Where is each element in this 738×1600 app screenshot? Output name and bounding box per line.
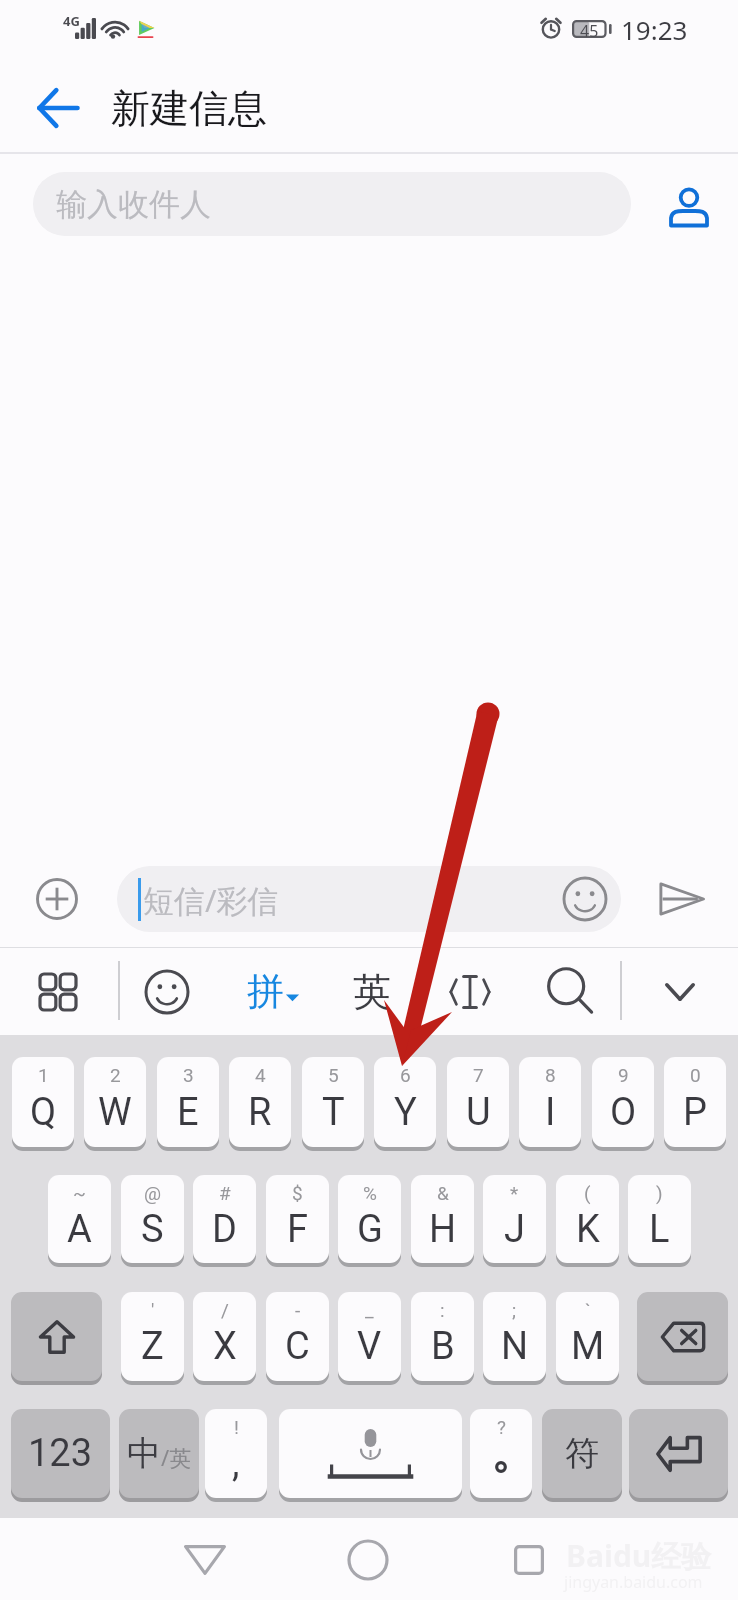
button[interactable]: ?	[470, 1409, 532, 1498]
button[interactable]: Emoji	[557, 871, 613, 927]
button[interactable]: ~	[48, 1175, 111, 1263]
staticText: 4	[255, 1064, 266, 1086]
staticText: I	[545, 1090, 556, 1135]
button[interactable]: :	[411, 1292, 474, 1381]
staticText: 4G	[63, 12, 80, 30]
button[interactable]: Move cursor	[428, 948, 512, 1035]
button[interactable]: Emoji	[123, 948, 211, 1035]
staticText: $	[292, 1182, 303, 1204]
staticText: %	[363, 1182, 377, 1204]
staticText: 0	[690, 1064, 701, 1086]
button[interactable]: Home	[313, 1519, 423, 1600]
staticText: 9	[618, 1064, 629, 1086]
staticText: /	[221, 1299, 229, 1321]
button[interactable]: ;	[483, 1292, 546, 1381]
button[interactable]: Hide keyboard	[634, 948, 726, 1035]
staticText: W	[98, 1090, 132, 1135]
button[interactable]: 8	[519, 1057, 581, 1147]
staticText: H	[429, 1207, 457, 1252]
button[interactable]: 2	[84, 1057, 146, 1147]
button[interactable]: 符	[542, 1409, 622, 1498]
staticText: jingyan.baidu.com	[564, 1571, 703, 1593]
button[interactable]: 6	[374, 1057, 436, 1147]
button[interactable]: #	[193, 1175, 256, 1263]
staticText: @	[144, 1182, 162, 1204]
staticText: V	[357, 1324, 382, 1369]
staticText: ;	[512, 1299, 517, 1321]
staticText: 输入收件人	[56, 185, 211, 224]
button[interactable]: /	[193, 1292, 256, 1381]
staticText: 1	[38, 1064, 49, 1086]
staticText: O	[610, 1090, 637, 1135]
staticText: 拼	[247, 968, 284, 1015]
staticText: 3	[183, 1064, 194, 1086]
staticText: K	[576, 1207, 600, 1252]
staticText: C	[285, 1324, 310, 1369]
button[interactable]: Back	[19, 69, 97, 147]
staticText: J	[504, 1207, 525, 1252]
button[interactable]: `	[556, 1292, 619, 1381]
button[interactable]	[629, 1409, 728, 1498]
button[interactable]: 1	[12, 1057, 74, 1147]
button[interactable]: Keyboard layouts	[14, 948, 102, 1035]
button[interactable]: !	[205, 1409, 267, 1498]
staticText: N	[501, 1324, 529, 1369]
button[interactable]: 英	[330, 948, 414, 1035]
staticText: !	[234, 1416, 239, 1438]
button[interactable]: 9	[592, 1057, 654, 1147]
button[interactable]	[279, 1409, 462, 1498]
staticText: D	[212, 1207, 237, 1252]
staticText: :	[440, 1299, 445, 1321]
button[interactable]: 输入收件人	[33, 172, 631, 236]
staticText: 6	[400, 1064, 411, 1086]
button[interactable]: (	[556, 1175, 619, 1263]
button[interactable]: %	[338, 1175, 401, 1263]
staticText: P	[683, 1090, 707, 1135]
staticText: 英	[353, 968, 391, 1016]
button[interactable]: 3	[157, 1057, 219, 1147]
button[interactable]: 123	[11, 1409, 110, 1498]
staticText: B	[431, 1324, 455, 1369]
button[interactable]: Pick contact	[645, 166, 733, 254]
button[interactable]: Recents	[474, 1519, 584, 1600]
button[interactable]: Back	[150, 1519, 260, 1600]
staticText: Y	[394, 1090, 417, 1135]
button[interactable]: )	[628, 1175, 691, 1263]
staticText: Z	[141, 1324, 164, 1369]
button[interactable]: _	[338, 1292, 401, 1381]
button[interactable]: Add attachment	[17, 859, 97, 939]
staticText: S	[141, 1207, 164, 1252]
button[interactable]: @	[121, 1175, 184, 1263]
staticText: U	[466, 1090, 491, 1135]
staticText: 45	[580, 20, 599, 38]
staticText: 符	[565, 1432, 599, 1475]
staticText: -	[295, 1299, 301, 1321]
button[interactable]: &	[411, 1175, 474, 1263]
button[interactable]: 7	[447, 1057, 509, 1147]
button[interactable]	[637, 1292, 728, 1381]
button[interactable]: 短信/彩信	[117, 866, 621, 932]
button[interactable]: 0	[664, 1057, 726, 1147]
button[interactable]: *	[483, 1175, 546, 1263]
button[interactable]	[11, 1292, 102, 1381]
button[interactable]: -	[266, 1292, 329, 1381]
button[interactable]: '	[121, 1292, 184, 1381]
staticText: ?	[497, 1416, 506, 1438]
staticText: R	[248, 1090, 272, 1135]
staticText: *	[510, 1182, 519, 1204]
staticText: Baidu经验	[566, 1535, 712, 1576]
button[interactable]: 5	[302, 1057, 364, 1147]
button[interactable]: 拼	[225, 948, 321, 1035]
staticText: '	[151, 1299, 155, 1321]
staticText: _	[365, 1299, 374, 1321]
button[interactable]: Send	[636, 854, 726, 944]
button[interactable]: $	[266, 1175, 329, 1263]
staticText: `	[585, 1299, 591, 1321]
button[interactable]: 中	[119, 1409, 199, 1498]
staticText: M	[571, 1324, 605, 1369]
button[interactable]: 4	[229, 1057, 291, 1147]
button[interactable]: Search	[528, 948, 612, 1035]
staticText: 新建信息	[111, 84, 267, 133]
staticText: )	[656, 1182, 663, 1204]
staticText: 2	[110, 1064, 121, 1086]
